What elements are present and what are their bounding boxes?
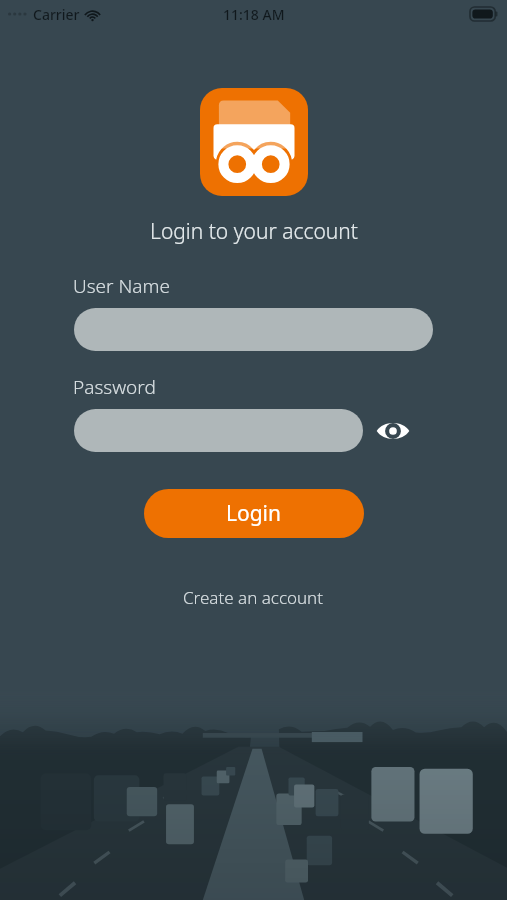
button[interactable] [74,308,433,351]
staticText: 11:18 AM [223,5,285,24]
button[interactable]: Create an account [169,580,338,615]
staticText: Password [73,374,156,400]
staticText: Create an account [183,586,324,609]
other: App logo [200,88,308,196]
button[interactable]: Show password [372,410,414,452]
button[interactable] [74,409,363,452]
staticText: Login to your account [150,217,358,246]
staticText: Login [226,499,282,528]
staticText: Carrier [33,5,80,24]
staticText: User Name [73,273,170,299]
button[interactable]: Login [144,489,364,538]
